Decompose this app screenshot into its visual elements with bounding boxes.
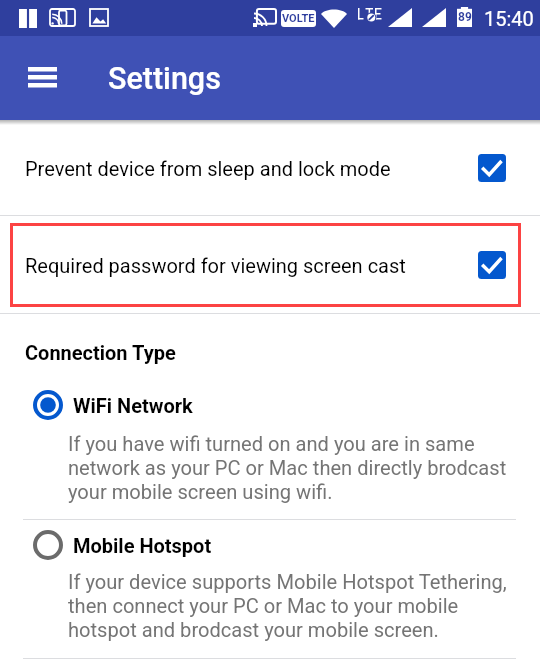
staticText: Settings xyxy=(108,61,221,97)
staticText: Prevent device from sleep and lock mode xyxy=(25,157,478,180)
staticText: If your device supports Mobile Hotspot T… xyxy=(68,570,520,642)
staticText: Connection Type xyxy=(25,341,176,364)
button[interactable]: Open navigation menu xyxy=(14,49,70,105)
staticText: 15:40 xyxy=(484,7,534,30)
staticText: WiFi Network xyxy=(73,394,193,417)
staticText: VOLTE xyxy=(282,12,315,25)
staticText: Required password for viewing screen cas… xyxy=(25,254,478,277)
staticText: 89 xyxy=(458,10,472,24)
button[interactable]: WiFi Network xyxy=(0,390,540,420)
button[interactable]: Required password for viewing screen cas… xyxy=(478,251,506,279)
button[interactable]: Mobile Hotspot xyxy=(0,530,540,560)
button[interactable]: Prevent device from sleep and lock mode,… xyxy=(478,154,506,182)
button[interactable]: Prevent device from sleep and lock mode xyxy=(0,122,540,214)
button[interactable]: Required password for viewing screen cas… xyxy=(0,223,540,307)
staticText: If you have wifi turned on and you are i… xyxy=(68,432,520,504)
staticText: Mobile Hotspot xyxy=(73,534,212,557)
